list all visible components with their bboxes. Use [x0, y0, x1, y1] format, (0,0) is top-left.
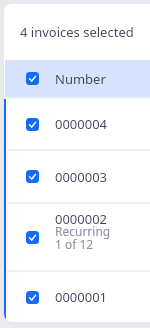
other: Selected 0000004	[26, 118, 39, 131]
other: Selected 0000003	[26, 170, 39, 183]
button[interactable]: Selected 0000004	[4, 99, 150, 149]
other: Selected 0000001	[26, 291, 39, 304]
staticText: 0000002	[55, 210, 108, 223]
staticText: 4 invoices selected	[20, 23, 134, 41]
button[interactable]: Selected 0000003	[4, 151, 150, 202]
staticText: 0000004	[55, 115, 108, 133]
staticText: 0000001	[55, 288, 108, 306]
staticText: 0000003	[55, 168, 108, 186]
staticText: 1 of 12	[55, 236, 94, 249]
staticText: Recurring	[55, 223, 111, 236]
button[interactable]: Selected 0000001	[4, 272, 150, 322]
other: Select all	[26, 72, 39, 85]
staticText: Number	[55, 70, 106, 88]
button[interactable]: Select all	[5, 60, 150, 97]
other: Selected 0000002	[26, 231, 39, 244]
button[interactable]: Selected 0000002	[4, 204, 150, 270]
